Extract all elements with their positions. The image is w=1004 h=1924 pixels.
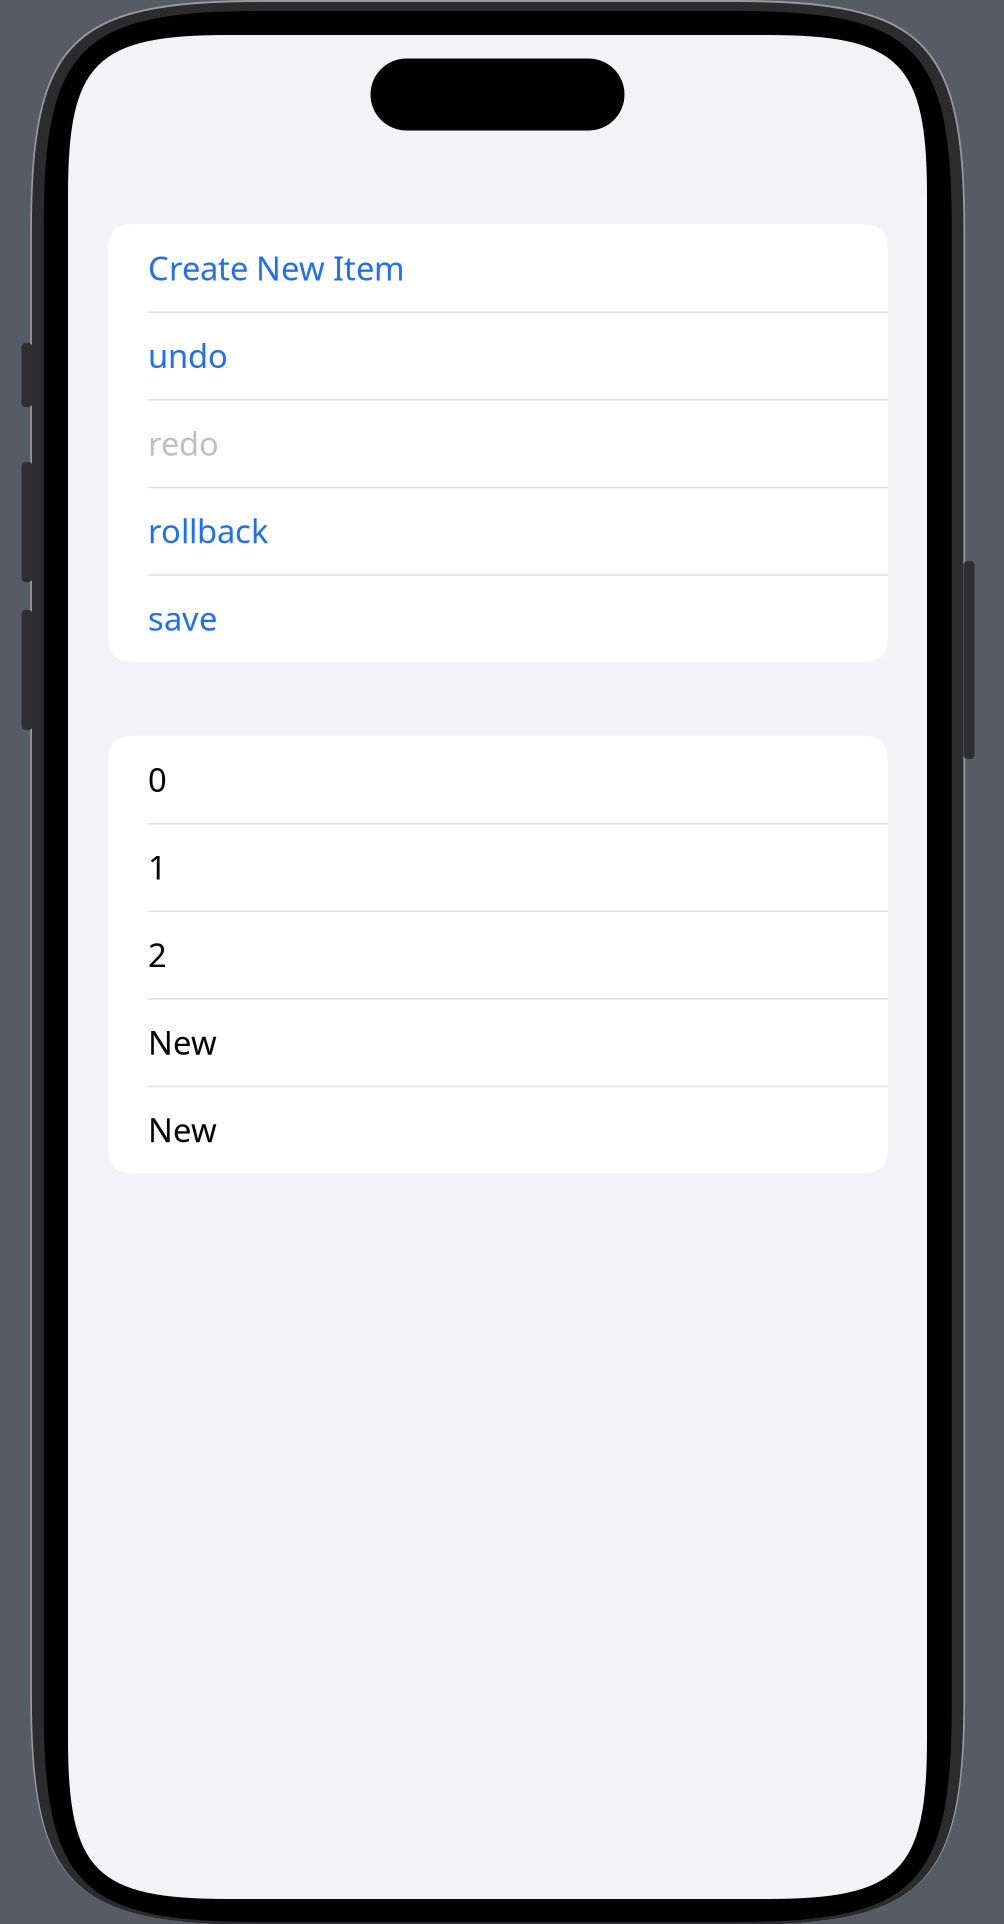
button[interactable]: redo [108, 399, 888, 487]
staticText: New [148, 1020, 217, 1064]
button[interactable]: rollback [108, 487, 888, 574]
button[interactable]: 2 [108, 911, 888, 998]
button[interactable]: New [108, 998, 888, 1086]
staticText: Create New Item [148, 246, 405, 290]
button[interactable]: 0 [108, 735, 888, 823]
staticText: New [148, 1107, 217, 1152]
staticText: rollback [148, 508, 268, 553]
button[interactable]: Create New Item [108, 224, 888, 312]
staticText: redo [148, 421, 219, 465]
button[interactable]: save [108, 574, 888, 662]
staticText: undo [148, 333, 228, 378]
button[interactable]: 1 [108, 823, 888, 911]
staticText: 2 [148, 932, 167, 977]
staticText: 0 [148, 757, 167, 802]
button[interactable]: New [108, 1086, 888, 1173]
staticText: 1 [148, 845, 167, 889]
button[interactable]: undo [108, 312, 888, 399]
staticText: save [148, 596, 217, 640]
